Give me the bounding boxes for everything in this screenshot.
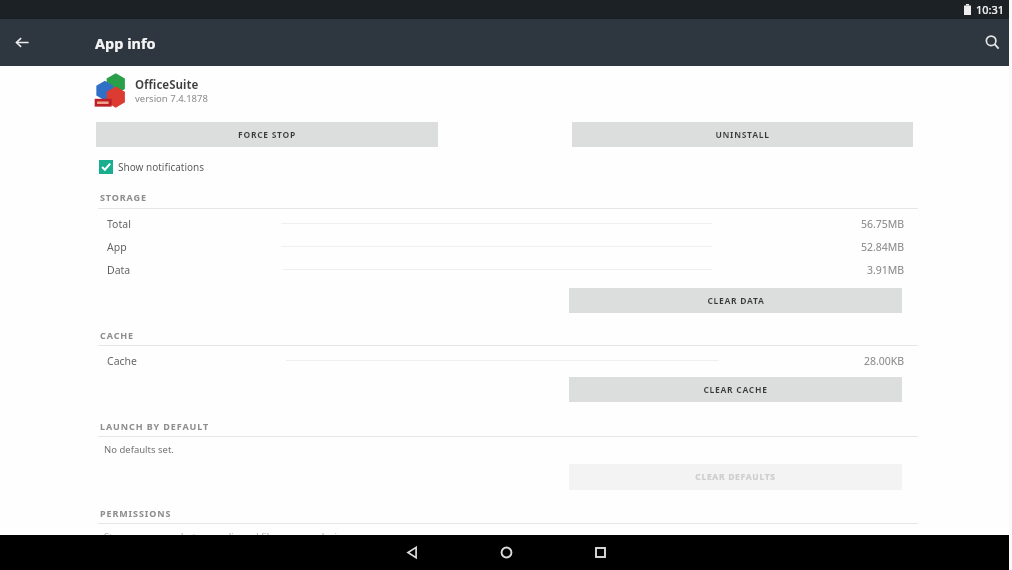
- button[interactable]: Back: [0, 19, 44, 66]
- button[interactable]: UNINSTALL: [572, 122, 913, 147]
- staticText: 56.75MB: [861, 217, 905, 231]
- staticText: Total: [107, 217, 131, 231]
- staticText: 3.91MB: [867, 263, 905, 277]
- button[interactable]: CLEAR CACHE: [569, 377, 902, 402]
- staticText: OfficeSuite: [135, 77, 199, 93]
- staticText: Cache: [107, 354, 137, 368]
- staticText: App info: [95, 33, 156, 53]
- staticText: CACHE: [100, 329, 135, 341]
- button[interactable]: Search: [972, 19, 1012, 66]
- staticText: PERMISSIONS: [100, 507, 172, 519]
- button[interactable]: Show notifications: [99, 160, 205, 174]
- button[interactable]: Total: [0, 209, 1012, 232]
- button[interactable]: Back: [384, 535, 440, 570]
- staticText: Storage, access photos, media and files …: [104, 530, 347, 543]
- staticText: UNINSTALL: [715, 129, 770, 141]
- staticText: No defaults set.: [104, 443, 174, 456]
- button[interactable]: Data: [0, 255, 1012, 278]
- button[interactable]: Home: [478, 535, 534, 570]
- button[interactable]: FORCE STOP: [96, 122, 438, 147]
- button[interactable]: App: [0, 232, 1012, 255]
- staticText: CLEAR CACHE: [703, 384, 768, 396]
- button[interactable]: CLEAR DEFAULTS: [569, 464, 902, 490]
- staticText: LAUNCH BY DEFAULT: [100, 420, 210, 432]
- staticText: 52.84MB: [861, 240, 905, 254]
- staticText: Data: [107, 263, 131, 277]
- button[interactable]: Recents: [572, 535, 628, 570]
- staticText: STORAGE: [100, 191, 147, 203]
- staticText: Show notifications: [118, 160, 205, 174]
- button[interactable]: Cache: [0, 346, 1012, 369]
- staticText: 28.00KB: [864, 354, 905, 368]
- staticText: CLEAR DATA: [707, 295, 765, 307]
- staticText: version 7.4.1878: [135, 92, 208, 105]
- staticText: App: [107, 240, 127, 254]
- staticText: 10:31: [976, 2, 1005, 17]
- staticText: FORCE STOP: [238, 129, 296, 141]
- button[interactable]: CLEAR DATA: [569, 288, 902, 313]
- staticText: CLEAR DEFAULTS: [695, 471, 776, 483]
